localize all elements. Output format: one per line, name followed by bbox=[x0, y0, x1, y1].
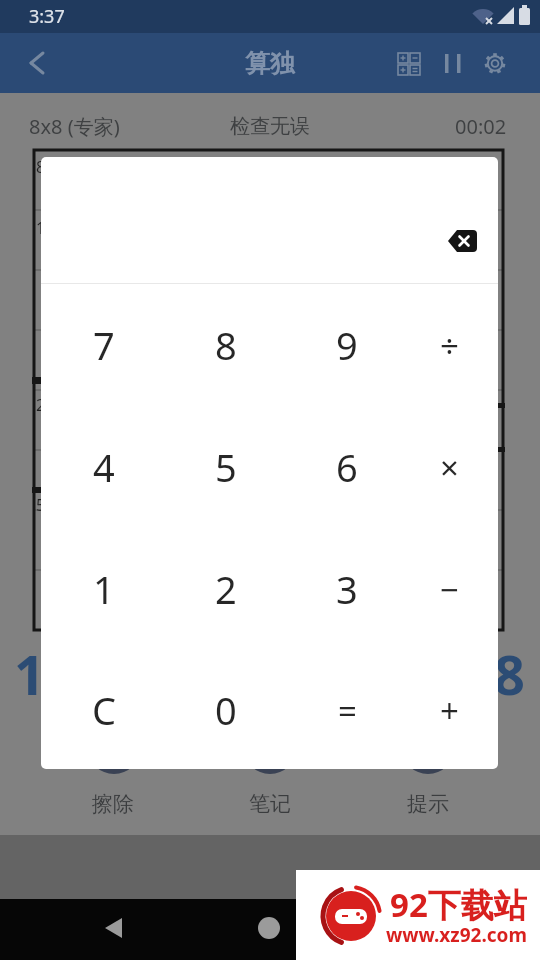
staticText: 5 bbox=[215, 441, 237, 493]
staticText: 笔记 bbox=[249, 791, 291, 817]
staticText: 0 bbox=[215, 684, 237, 736]
button[interactable]: 92下载站 bbox=[296, 870, 540, 960]
staticText: + bbox=[440, 688, 459, 733]
staticText: www.xz92.com bbox=[386, 922, 527, 946]
staticText: × bbox=[440, 445, 459, 490]
staticText: 8 bbox=[494, 637, 525, 711]
button[interactable] bbox=[90, 904, 138, 952]
staticText: 6 bbox=[336, 441, 358, 493]
button[interactable]: 笔记 bbox=[180, 714, 360, 894]
button[interactable] bbox=[439, 221, 487, 261]
staticText: 擦除 bbox=[92, 791, 134, 817]
staticText: 9 bbox=[336, 319, 358, 371]
staticText: 92下载站 bbox=[390, 882, 527, 926]
staticText: 3:37 bbox=[29, 4, 65, 29]
button[interactable] bbox=[473, 41, 517, 85]
staticText: 2 bbox=[36, 394, 46, 416]
button[interactable]: 1 bbox=[59, 544, 149, 634]
button[interactable] bbox=[432, 41, 476, 85]
staticText: 00:02 bbox=[455, 113, 507, 140]
staticText: 检查无误 bbox=[230, 114, 310, 139]
button[interactable]: = bbox=[302, 665, 392, 755]
button[interactable]: 3 bbox=[302, 544, 392, 634]
staticText: 8 bbox=[36, 156, 46, 178]
button[interactable]: 7 bbox=[59, 300, 149, 390]
button[interactable]: ÷ bbox=[404, 300, 494, 390]
staticText: − bbox=[440, 567, 459, 612]
staticText: 2 bbox=[215, 563, 237, 615]
button[interactable]: 6 bbox=[302, 422, 392, 512]
button[interactable]: 2 bbox=[181, 544, 271, 634]
button[interactable]: 4 bbox=[59, 422, 149, 512]
button[interactable]: − bbox=[404, 544, 494, 634]
staticText: C bbox=[92, 684, 117, 736]
staticText: 8 bbox=[215, 319, 237, 371]
staticText: 3 bbox=[336, 563, 358, 615]
button[interactable]: C bbox=[59, 665, 149, 755]
staticText: = bbox=[338, 688, 357, 733]
button[interactable]: 9 bbox=[302, 300, 392, 390]
staticText: 1 bbox=[93, 563, 115, 615]
button[interactable] bbox=[387, 41, 431, 85]
button[interactable]: 5 bbox=[181, 422, 271, 512]
staticText: 7 bbox=[93, 319, 115, 371]
button[interactable] bbox=[13, 41, 57, 85]
staticText: 提示 bbox=[407, 791, 449, 817]
staticText: ÷ bbox=[440, 323, 459, 368]
button[interactable]: 擦除 bbox=[23, 714, 203, 894]
staticText: 4 bbox=[93, 441, 115, 493]
staticText: 1 bbox=[14, 637, 45, 711]
button[interactable]: 8 bbox=[181, 300, 271, 390]
button[interactable]: + bbox=[404, 665, 494, 755]
button[interactable]: × bbox=[404, 422, 494, 512]
button[interactable]: 提示 bbox=[338, 714, 518, 894]
button[interactable] bbox=[245, 904, 293, 952]
staticText: 1 bbox=[36, 217, 46, 239]
staticText: 5 bbox=[36, 494, 46, 516]
button[interactable]: 0 bbox=[181, 665, 271, 755]
staticText: 8x8 (专家) bbox=[29, 113, 120, 140]
staticText: 算独 bbox=[245, 48, 295, 79]
